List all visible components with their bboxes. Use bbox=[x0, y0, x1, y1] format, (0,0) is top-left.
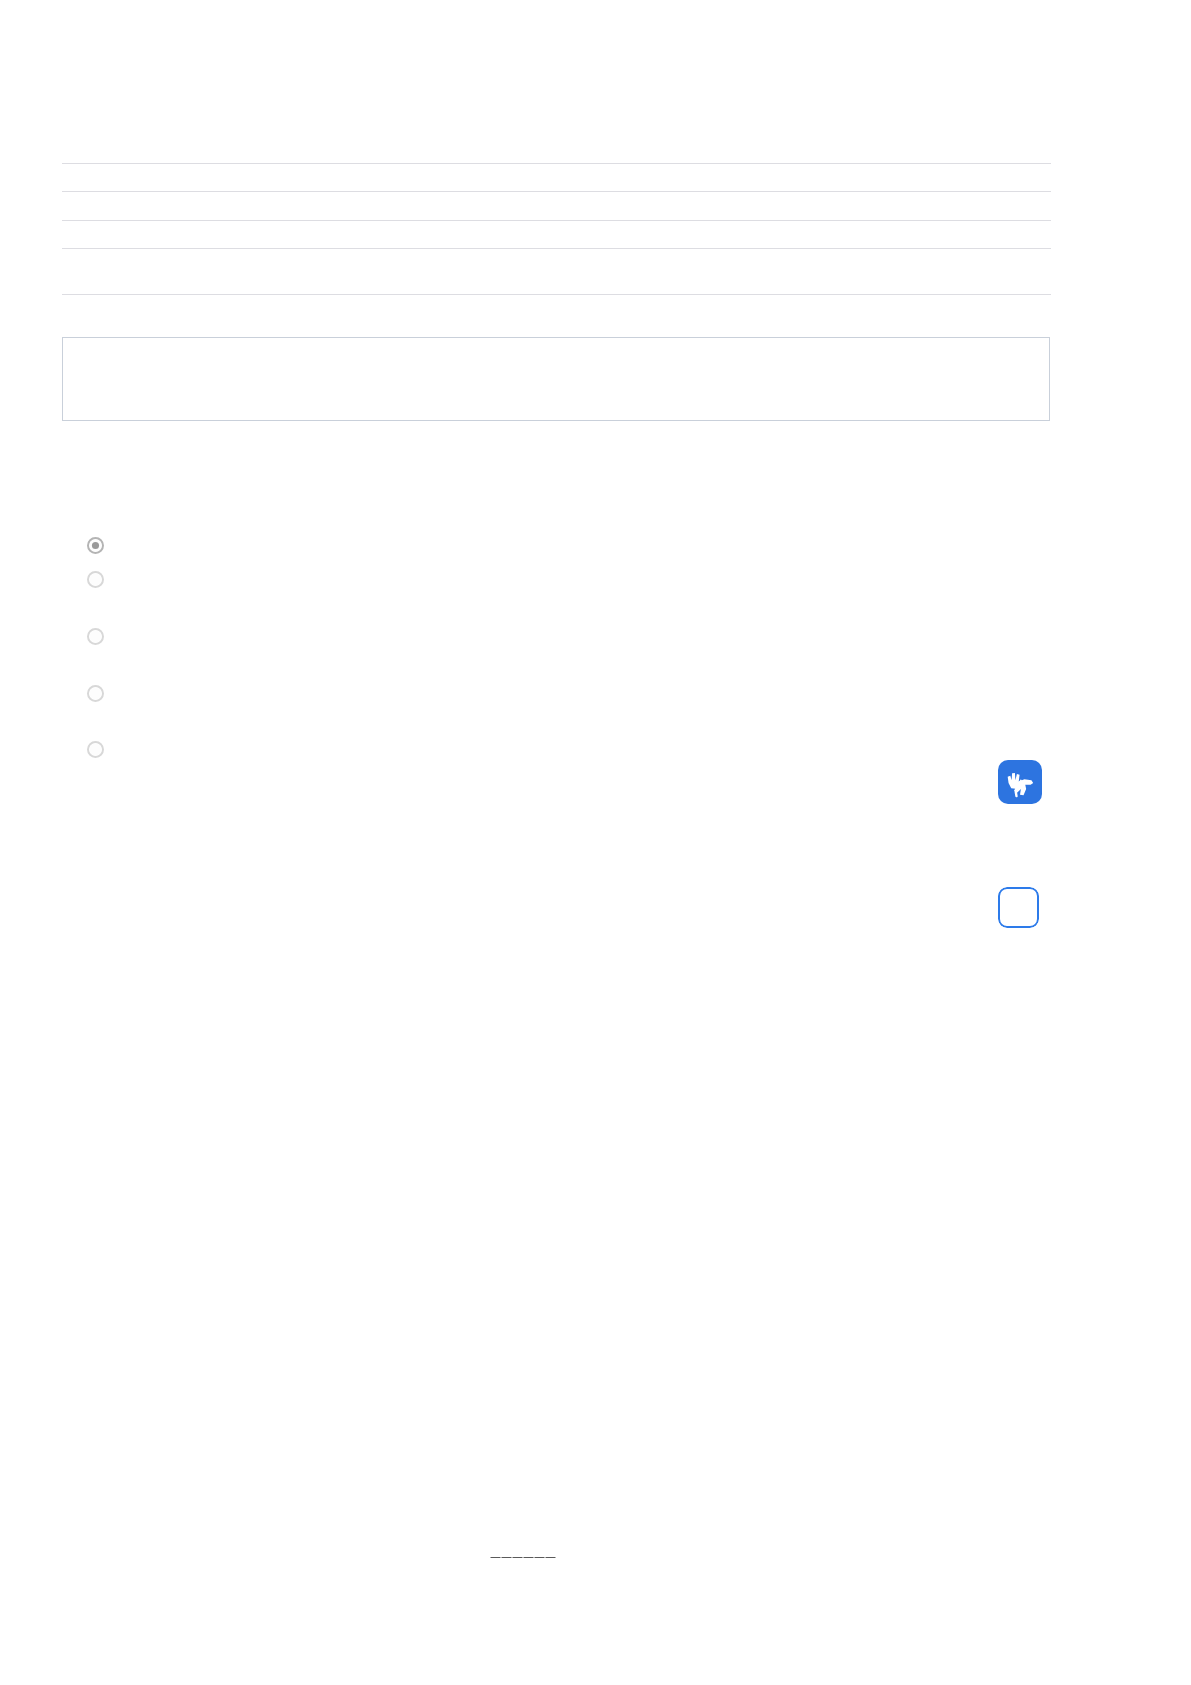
button[interactable] bbox=[87, 537, 104, 554]
staticText: —————— bbox=[490, 1548, 556, 1563]
button[interactable] bbox=[87, 741, 104, 758]
button[interactable]: —————— bbox=[490, 1548, 556, 1563]
button[interactable]: Action bbox=[998, 887, 1039, 928]
button[interactable] bbox=[87, 685, 104, 702]
button[interactable] bbox=[62, 337, 1050, 421]
button[interactable] bbox=[87, 571, 104, 588]
button[interactable]: Sign language bbox=[998, 760, 1042, 804]
button[interactable] bbox=[87, 628, 104, 645]
